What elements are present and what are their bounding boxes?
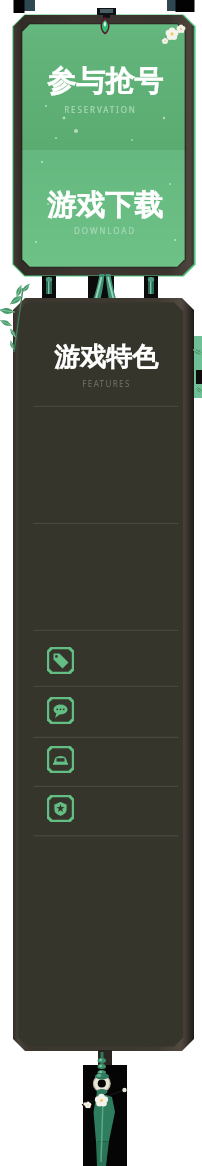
staticText: FEATURES [82,378,131,389]
staticText: RESERVATION [64,104,137,115]
button[interactable]: Tag [47,647,74,674]
staticText: 游戏特色 [54,341,158,374]
staticText: DOWNLOAD [74,225,136,236]
button[interactable]: Chat [47,697,74,724]
button[interactable]: Vehicle [47,746,74,773]
button[interactable]: Badge [47,795,74,822]
staticText: 参与抢号 [47,63,163,100]
staticText: 游戏下载 [47,187,163,224]
button[interactable] [23,24,185,149]
button[interactable] [23,149,185,265]
